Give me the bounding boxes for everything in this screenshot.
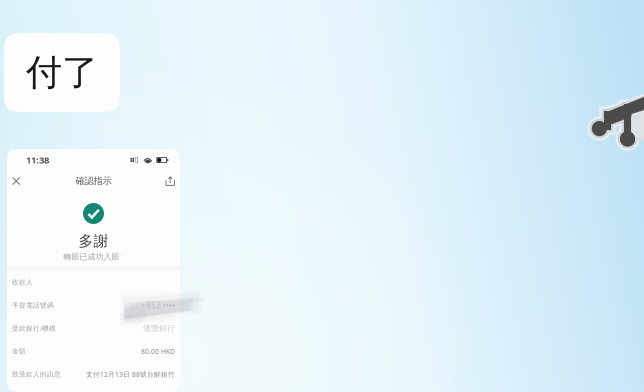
staticText: 手提電話號碼 bbox=[12, 301, 54, 309]
button[interactable]: 轉賬已成功入賬 bbox=[63, 252, 123, 262]
staticText: 多謝 bbox=[78, 232, 108, 250]
staticText: 受款銀行/機構 bbox=[12, 324, 56, 333]
staticText: 80.00 HKD bbox=[141, 347, 175, 356]
staticText: 金額 bbox=[12, 347, 26, 355]
staticText: 滙豐銀行 bbox=[143, 323, 175, 333]
staticText: 致受款人的訊息 bbox=[12, 370, 61, 378]
staticText: ˅ bbox=[121, 252, 123, 261]
staticText: 支付12月13日 88號台鮮銀竹 bbox=[86, 370, 175, 379]
staticText: 收款人 bbox=[12, 278, 33, 286]
button[interactable]: 付了 bbox=[4, 33, 120, 112]
staticText: 付了 bbox=[26, 50, 98, 95]
button[interactable]: Share bbox=[151, 171, 175, 191]
staticText: 轉賬已成功入賬 bbox=[63, 252, 119, 262]
staticText: +852 •••• bbox=[141, 300, 175, 311]
button[interactable]: Close bbox=[12, 171, 36, 191]
staticText: 11:38 bbox=[26, 154, 49, 166]
staticText: 確認指示 bbox=[75, 175, 111, 187]
